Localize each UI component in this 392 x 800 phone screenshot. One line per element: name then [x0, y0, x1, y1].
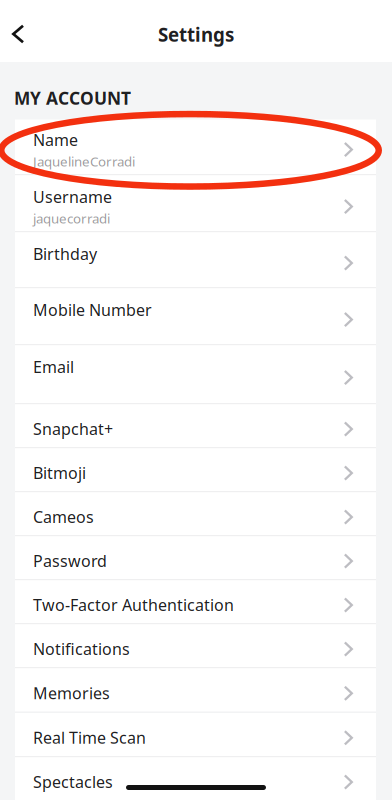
- staticText: Snapchat+: [33, 418, 113, 439]
- staticText: jaquecorradi: [33, 209, 110, 227]
- staticText: Bitmoji: [33, 462, 86, 483]
- button[interactable]: Bitmoji: [15, 448, 376, 492]
- button[interactable]: Spectacles: [15, 757, 376, 800]
- button[interactable]: Name: [15, 118, 376, 175]
- staticText: MY ACCOUNT: [14, 86, 131, 109]
- button[interactable]: Birthday: [15, 232, 376, 288]
- staticText: Email: [33, 356, 74, 377]
- button[interactable]: Real Time Scan: [15, 713, 376, 757]
- button[interactable]: Snapchat+: [15, 404, 376, 448]
- staticText: Memories: [33, 682, 110, 704]
- button[interactable]: Username: [15, 175, 376, 232]
- staticText: Mobile Number: [33, 299, 152, 320]
- button[interactable]: Two-Factor Authentication: [15, 580, 376, 624]
- button[interactable]: Back: [0, 3, 38, 65]
- staticText: JaquelineCorradi: [33, 152, 135, 170]
- staticText: Settings: [158, 22, 234, 47]
- staticText: Spectacles: [33, 771, 113, 792]
- staticText: Two-Factor Authentication: [33, 594, 234, 615]
- staticText: Birthday: [33, 243, 97, 264]
- staticText: Notifications: [33, 638, 130, 659]
- button[interactable]: Cameos: [15, 492, 376, 536]
- button[interactable]: Email: [15, 345, 376, 404]
- button[interactable]: Mobile Number: [15, 288, 376, 345]
- staticText: Cameos: [33, 506, 94, 527]
- staticText: Username: [33, 186, 112, 207]
- staticText: Real Time Scan: [33, 727, 146, 748]
- staticText: Password: [33, 550, 107, 571]
- button[interactable]: Memories: [15, 668, 376, 713]
- staticText: Name: [33, 129, 78, 150]
- button[interactable]: Password: [15, 536, 376, 580]
- button[interactable]: Notifications: [15, 624, 376, 668]
